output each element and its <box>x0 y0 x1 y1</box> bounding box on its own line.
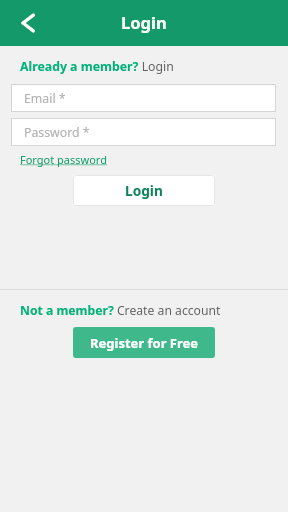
button[interactable]: Email * <box>11 84 276 112</box>
staticText: Not a member? Create an account <box>20 302 221 319</box>
button[interactable]: Back <box>12 7 44 39</box>
button[interactable]: Password * <box>11 118 276 146</box>
staticText: Password * <box>24 124 90 141</box>
staticText: Forgot password <box>20 152 107 167</box>
staticText: Login <box>125 181 163 200</box>
staticText: Already a member? Login <box>20 58 174 75</box>
button[interactable]: Forgot password <box>20 152 107 167</box>
staticText: Login <box>121 11 167 33</box>
button[interactable]: Login <box>73 175 215 206</box>
staticText: Register for Free <box>90 334 199 352</box>
button[interactable]: Not a member? Create an account <box>20 302 221 319</box>
button[interactable]: Register for Free <box>73 327 215 358</box>
button[interactable]: Already a member? Login <box>20 58 174 75</box>
staticText: Email * <box>24 90 66 107</box>
